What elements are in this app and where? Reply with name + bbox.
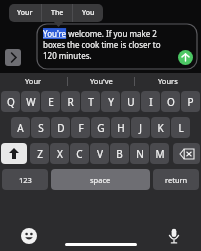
staticText: space (90, 175, 111, 185)
button[interactable]: Dictation (165, 227, 183, 245)
button[interactable]: return (153, 169, 199, 190)
button[interactable]: C (70, 143, 89, 164)
button[interactable]: Backspace (173, 143, 200, 164)
button[interactable]: You've (68, 73, 134, 89)
button[interactable]: T (81, 91, 100, 112)
button[interactable]: H (111, 117, 130, 138)
staticText: Z (37, 147, 43, 161)
button[interactable]: R (61, 91, 80, 112)
staticText: A (17, 121, 24, 135)
staticText: R (67, 95, 74, 109)
button[interactable]: Q (1, 91, 20, 112)
button[interactable]: Send (178, 50, 193, 65)
button[interactable]: A (11, 117, 30, 138)
staticText: You're welcome. If you make 2 boxes the … (43, 28, 175, 61)
button[interactable]: V (90, 143, 109, 164)
button[interactable]: X (50, 143, 69, 164)
button[interactable]: U (121, 91, 140, 112)
button[interactable]: P (181, 91, 200, 112)
button[interactable]: Expand apps (5, 49, 21, 66)
button[interactable]: W (21, 91, 40, 112)
button[interactable]: Y (101, 91, 120, 112)
button[interactable]: You (73, 4, 103, 22)
button[interactable]: Your (0, 73, 67, 89)
staticText: U (127, 95, 135, 109)
staticText: return (165, 175, 188, 185)
staticText: L (178, 121, 184, 135)
button[interactable]: M (150, 143, 169, 164)
button[interactable]: space (51, 169, 150, 190)
staticText: W (26, 95, 36, 109)
button[interactable]: E (41, 91, 60, 112)
button[interactable]: The (42, 4, 72, 22)
button[interactable]: N (130, 143, 149, 164)
staticText: I (149, 95, 153, 109)
staticText: T (88, 95, 94, 109)
staticText: N (136, 147, 144, 161)
staticText: Your (25, 76, 42, 86)
staticText: J (139, 121, 142, 135)
staticText: K (157, 121, 164, 135)
button[interactable]: Z (30, 143, 49, 164)
staticText: X (57, 147, 63, 161)
staticText: Your (17, 8, 33, 18)
staticText: F (78, 121, 84, 135)
button[interactable]: K (151, 117, 170, 138)
staticText: Q (7, 95, 15, 109)
button[interactable]: Your (9, 4, 41, 22)
staticText: 123 (19, 175, 32, 185)
staticText: P (187, 95, 194, 109)
staticText: V (97, 147, 103, 161)
button[interactable]: I (141, 91, 160, 112)
button[interactable]: B (110, 143, 129, 164)
staticText: Y (108, 95, 114, 109)
staticText: B (116, 147, 123, 161)
staticText: E (48, 95, 54, 109)
button[interactable]: F (71, 117, 90, 138)
staticText: You've (90, 76, 113, 86)
button[interactable]: L (171, 117, 190, 138)
button[interactable]: D (51, 117, 70, 138)
button[interactable]: O (161, 91, 180, 112)
staticText: C (76, 147, 83, 161)
staticText: The (51, 8, 64, 18)
button[interactable]: J (131, 117, 150, 138)
staticText: O (167, 95, 175, 109)
button[interactable]: Shift (1, 143, 27, 164)
staticText: H (117, 121, 125, 135)
staticText: M (155, 147, 165, 161)
button[interactable]: S (31, 117, 50, 138)
staticText: D (57, 121, 65, 135)
staticText: Yours (158, 76, 178, 86)
button[interactable]: Yours (135, 73, 201, 89)
staticText: S (38, 121, 44, 135)
button[interactable]: Emoji (20, 227, 38, 245)
button[interactable]: 123 (2, 169, 48, 190)
staticText: You (82, 8, 95, 18)
button[interactable]: G (91, 117, 110, 138)
staticText: G (97, 121, 105, 135)
